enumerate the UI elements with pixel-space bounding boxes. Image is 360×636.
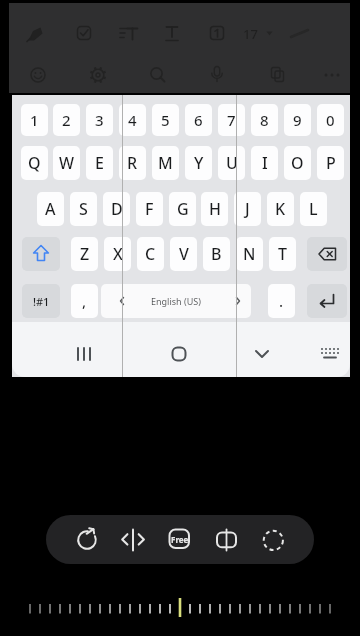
button[interactable]: Z: [71, 237, 98, 271]
button[interactable]: [261, 58, 293, 90]
button[interactable]: M: [152, 146, 179, 180]
button[interactable]: B: [203, 237, 230, 271]
button[interactable]: O: [284, 146, 311, 180]
staticText: .: [279, 291, 284, 311]
button[interactable]: P: [317, 146, 344, 180]
button[interactable]: K: [267, 192, 294, 226]
button[interactable]: S: [70, 192, 97, 226]
button[interactable]: 2: [53, 104, 80, 136]
staticText: 1: [30, 110, 39, 130]
staticText: K: [275, 198, 286, 220]
button[interactable]: [68, 16, 100, 50]
staticText: 0: [326, 110, 335, 130]
button[interactable]: [201, 16, 233, 50]
staticText: 8: [260, 110, 269, 130]
button[interactable]: [250, 517, 295, 562]
button[interactable]: [160, 338, 200, 370]
staticText: I: [262, 152, 268, 174]
button[interactable]: [204, 517, 249, 562]
staticText: 6: [194, 110, 203, 130]
button[interactable]: I: [251, 146, 278, 180]
button[interactable]: ,: [71, 284, 98, 318]
staticText: 7: [227, 110, 236, 130]
staticText: M: [158, 152, 173, 174]
button[interactable]: [307, 237, 347, 271]
button[interactable]: 6: [185, 104, 212, 136]
button[interactable]: X: [104, 237, 131, 271]
button[interactable]: [156, 16, 188, 50]
staticText: Free: [171, 534, 189, 545]
button[interactable]: 0: [317, 104, 344, 136]
button[interactable]: N: [236, 237, 263, 271]
button[interactable]: W: [53, 146, 80, 180]
button[interactable]: [157, 517, 202, 562]
button[interactable]: Y: [185, 146, 212, 180]
button[interactable]: L: [300, 192, 327, 226]
staticText: Y: [194, 152, 204, 174]
staticText: Q: [28, 152, 41, 174]
staticText: N: [243, 243, 256, 265]
staticText: F: [145, 198, 154, 220]
button[interactable]: D: [103, 192, 130, 226]
button[interactable]: [20, 16, 52, 50]
staticText: G: [177, 198, 189, 220]
button[interactable]: V: [170, 237, 197, 271]
staticText: X: [113, 243, 123, 265]
button[interactable]: 8: [251, 104, 278, 136]
button[interactable]: T: [269, 237, 296, 271]
staticText: 17: [243, 25, 258, 43]
staticText: L: [309, 198, 318, 220]
button[interactable]: [143, 58, 175, 90]
staticText: P: [326, 152, 336, 174]
button[interactable]: G: [169, 192, 196, 226]
staticText: A: [45, 198, 56, 220]
staticText: V: [179, 243, 189, 265]
button[interactable]: [24, 58, 56, 90]
button[interactable]: A: [37, 192, 64, 226]
button[interactable]: R: [119, 146, 146, 180]
staticText: 4: [128, 110, 137, 130]
button[interactable]: H: [201, 192, 228, 226]
staticText: 3: [95, 110, 104, 130]
staticText: C: [145, 243, 156, 265]
button[interactable]: J: [234, 192, 261, 226]
staticText: W: [59, 152, 75, 174]
staticText: 9: [293, 110, 302, 130]
button[interactable]: 3: [86, 104, 113, 136]
staticText: B: [211, 243, 222, 265]
button[interactable]: 4: [119, 104, 146, 136]
button[interactable]: [84, 58, 116, 90]
button[interactable]: [242, 338, 282, 370]
button[interactable]: !#1: [22, 284, 60, 318]
button[interactable]: [64, 338, 104, 370]
staticText: T: [278, 243, 287, 265]
staticText: !#1: [33, 294, 50, 309]
button[interactable]: .: [268, 284, 295, 318]
button[interactable]: Q: [21, 146, 48, 180]
button[interactable]: 7: [218, 104, 245, 136]
button[interactable]: [22, 237, 60, 271]
button[interactable]: C: [137, 237, 164, 271]
button[interactable]: Free: [168, 530, 191, 548]
staticText: J: [245, 198, 250, 220]
button[interactable]: [113, 16, 145, 50]
button[interactable]: U: [218, 146, 245, 180]
button[interactable]: E: [86, 146, 113, 180]
staticText: O: [291, 152, 304, 174]
button[interactable]: [111, 517, 156, 562]
staticText: 2: [62, 110, 71, 130]
button[interactable]: 9: [284, 104, 311, 136]
button[interactable]: 1: [21, 104, 48, 136]
button[interactable]: [312, 338, 350, 370]
button[interactable]: [64, 517, 109, 562]
button[interactable]: F: [136, 192, 163, 226]
staticText: E: [95, 152, 104, 174]
staticText: R: [127, 152, 138, 174]
button[interactable]: English (US): [101, 284, 251, 318]
staticText: English (US): [151, 295, 201, 307]
button[interactable]: [307, 284, 347, 318]
button[interactable]: 5: [152, 104, 179, 136]
